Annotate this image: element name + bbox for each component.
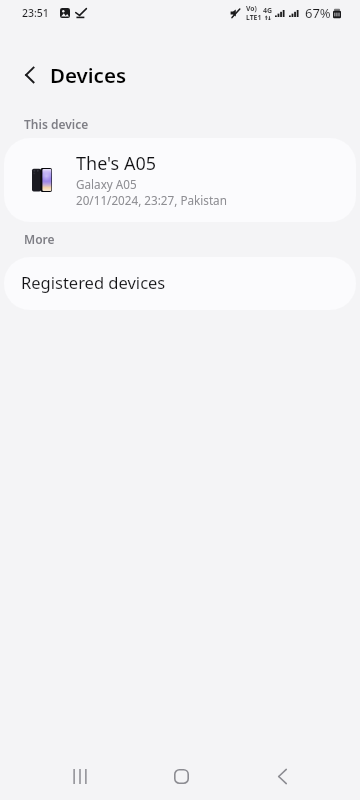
staticText: More	[24, 231, 55, 247]
staticText: 4G	[263, 6, 273, 16]
staticText: 23:51	[22, 6, 49, 20]
staticText: This device	[24, 116, 89, 132]
staticText: Vo)	[246, 4, 257, 13]
staticText: Devices	[50, 61, 126, 89]
button[interactable]: Back	[252, 749, 312, 800]
staticText: Galaxy A05	[76, 176, 137, 192]
button[interactable]: Back	[0, 60, 48, 90]
staticText: 20/11/2024, 23:27, Pakistan	[76, 192, 227, 208]
staticText: The's A05	[76, 151, 157, 176]
button[interactable]: Home	[151, 749, 211, 800]
button[interactable]: The's A05	[4, 138, 356, 222]
staticText: LTE1	[246, 13, 262, 22]
button[interactable]: Registered devices	[4, 257, 356, 310]
button[interactable]: Recent apps	[50, 749, 110, 800]
staticText: Registered devices	[21, 271, 166, 293]
staticText: 67%	[305, 4, 331, 22]
